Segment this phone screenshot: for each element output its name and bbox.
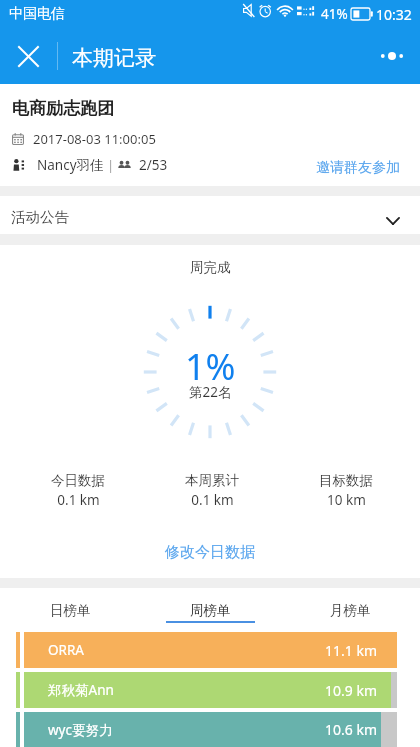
staticText: 41% (321, 5, 348, 23)
button[interactable]: 活动公告 (0, 196, 420, 234)
staticText: 10:32 (376, 5, 412, 24)
button[interactable]: 郑秋菊Ann (0, 672, 420, 708)
staticText: 本周累计 (185, 472, 239, 489)
staticText: 今日数据 (51, 472, 105, 489)
button[interactable]: wyc要努力 (0, 712, 420, 747)
staticText: 本期记录 (72, 45, 156, 71)
staticText: 目标数据 (319, 472, 373, 489)
button[interactable]: 修改今日数据 (141, 539, 279, 566)
staticText: 周榜单 (190, 602, 231, 619)
staticText: 2/53 (139, 156, 168, 174)
button[interactable]: ORRA (0, 632, 420, 668)
staticText: | (107, 156, 115, 174)
staticText: 10 km (327, 491, 366, 509)
staticText: 活动公告 (11, 208, 69, 226)
staticText: 10.9 km (325, 681, 377, 700)
button[interactable]: More options (364, 28, 420, 84)
staticText: 第22名 (189, 383, 232, 401)
staticText: 2017-08-03 11:00:05 (33, 130, 156, 148)
staticText: 电商励志跑团 (12, 98, 114, 119)
staticText: 日榜单 (50, 602, 91, 619)
staticText: 11.1 km (325, 641, 377, 660)
staticText: 周完成 (190, 259, 231, 276)
staticText: 10.6 km (325, 720, 377, 739)
staticText: 修改今日数据 (165, 543, 255, 562)
button[interactable]: Close (0, 28, 56, 84)
staticText: wyc要努力 (48, 721, 113, 739)
staticText: ORRA (48, 641, 84, 659)
staticText: 1% (185, 342, 236, 391)
staticText: 郑秋菊Ann (48, 681, 114, 699)
button[interactable]: 月榜单 (280, 588, 420, 632)
button[interactable]: 日榜单 (0, 588, 140, 632)
staticText: 中国电信 (9, 5, 65, 23)
staticText: Nancy羽佳 (37, 156, 104, 174)
staticText: 0.1 km (57, 491, 100, 509)
staticText: 邀请群友参加 (316, 159, 400, 177)
button[interactable]: 周榜单 (140, 588, 280, 632)
button[interactable]: 邀请群友参加 (296, 154, 420, 182)
staticText: 0.1 km (191, 491, 234, 509)
staticText: 月榜单 (330, 602, 371, 619)
